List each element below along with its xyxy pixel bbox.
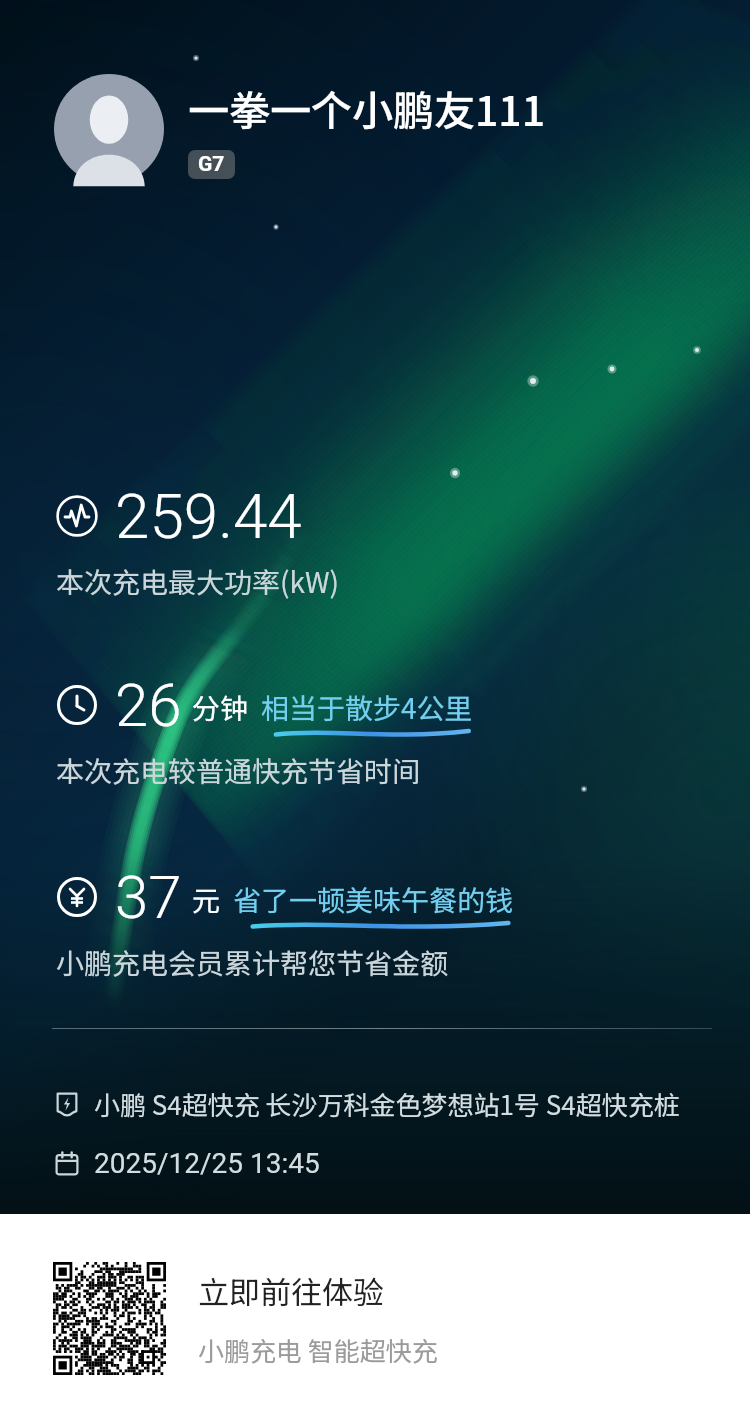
staticText: 259.44: [115, 480, 302, 552]
staticText: 一拳一个小鹏友111: [188, 78, 546, 137]
staticText: G7: [198, 152, 225, 177]
staticText: 元: [192, 879, 221, 920]
staticText: 本次充电最大功率(kW): [56, 561, 339, 602]
staticText: 37: [115, 862, 182, 932]
staticText: 小鹏充电 智能超快充: [198, 1331, 438, 1369]
staticText: 小鹏 S4超快充 长沙万科金色梦想站1号 S4超快充桩: [94, 1085, 680, 1123]
staticText: 立即前往体验: [198, 1268, 384, 1313]
button[interactable]: User profile 一拳一个小鹏友111 G7: [54, 74, 546, 184]
staticText: 分钟: [192, 687, 249, 728]
staticText: 小鹏充电会员累计帮您节省金额: [56, 942, 449, 983]
staticText: 2025/12/25 13:45: [94, 1147, 320, 1180]
staticText: 本次充电较普通快充节省时间: [56, 750, 421, 791]
staticText: 相当于散步4公里: [261, 687, 473, 728]
staticText: 26: [115, 670, 182, 740]
button[interactable]: 立即前往体验: [0, 1214, 750, 1422]
staticText: 省了一顿美味午餐的钱: [233, 879, 514, 920]
